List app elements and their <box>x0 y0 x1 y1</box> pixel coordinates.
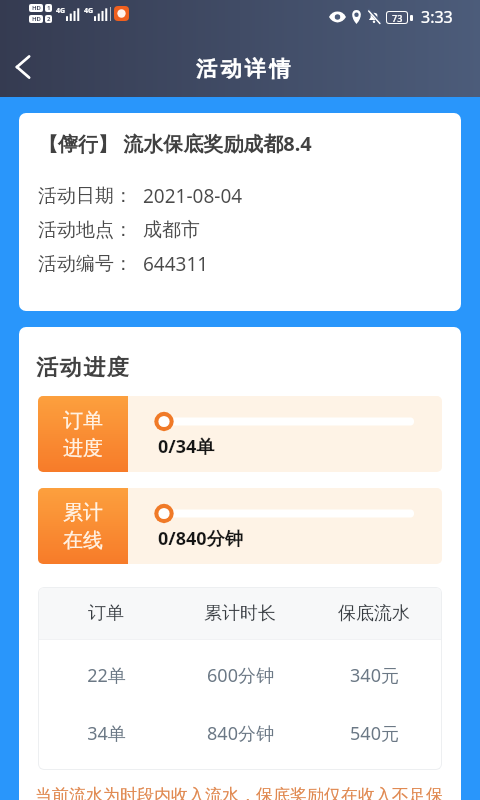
button[interactable]: Back <box>0 40 46 93</box>
staticText: 累计 <box>63 500 103 525</box>
staticText: 活动详情 <box>196 56 294 82</box>
staticText: 3:33 <box>421 6 453 28</box>
staticText: 订单 <box>88 602 124 625</box>
staticText: 活动编号： <box>38 252 133 276</box>
staticText: 1 <box>47 4 51 12</box>
staticText: 4G <box>56 6 66 16</box>
staticText: 累计时长 <box>204 602 276 625</box>
staticText: 0/840分钟 <box>158 526 243 551</box>
button[interactable]: 累计 <box>38 488 442 564</box>
staticText: 2 <box>47 15 51 23</box>
staticText: 成都市 <box>143 218 200 242</box>
staticText: 【儜行】 流水保底奖励成都8.4 <box>38 130 312 157</box>
staticText: 600分钟 <box>207 663 274 688</box>
staticText: HD <box>32 15 41 23</box>
staticText: 保底流水 <box>338 602 410 625</box>
staticText: 840分钟 <box>207 721 274 746</box>
staticText: 活动日期： <box>38 184 133 208</box>
staticText: 2021-08-04 <box>143 183 243 209</box>
staticText: 540元 <box>350 721 399 746</box>
staticText: HD <box>32 4 41 12</box>
staticText: 73 <box>392 12 403 23</box>
staticText: 0/34单 <box>158 434 215 459</box>
staticText: 活动地点： <box>38 218 133 242</box>
button[interactable]: 【儜行】 流水保底奖励成都8.4 <box>19 113 461 311</box>
staticText: 22单 <box>87 663 126 688</box>
staticText: 当前流水为时段内收入流水，保底奖励仅在收入不足保 <box>35 785 443 800</box>
staticText: 活动进度 <box>36 354 131 382</box>
staticText: 在线 <box>63 528 103 553</box>
staticText: 34单 <box>87 721 126 746</box>
staticText: 订单 <box>63 408 103 433</box>
staticText: 进度 <box>63 436 103 461</box>
button[interactable]: 订单 <box>38 396 442 472</box>
staticText: 340元 <box>350 663 399 688</box>
staticText: 644311 <box>143 251 209 277</box>
staticText: 4G <box>84 6 94 16</box>
